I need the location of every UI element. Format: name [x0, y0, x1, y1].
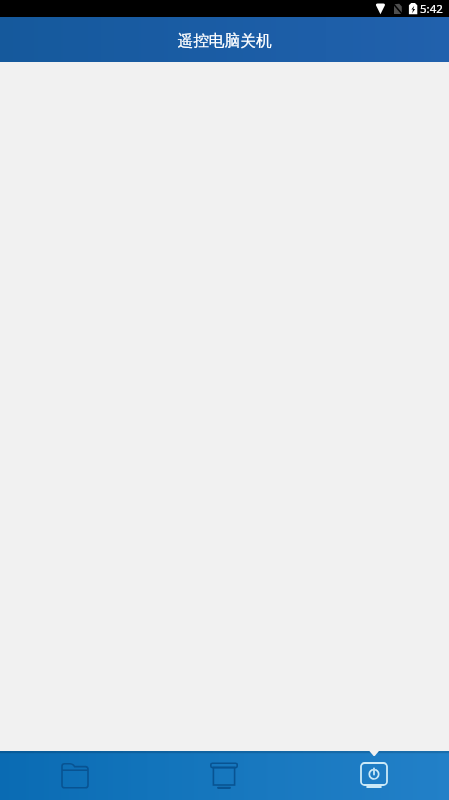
button[interactable]: Screen	[149, 751, 299, 800]
button[interactable]: Shutdown	[299, 751, 449, 800]
staticText: 遥控电脑关机	[177, 31, 272, 51]
staticText: 5:42	[420, 1, 443, 17]
button[interactable]: Files	[0, 751, 149, 800]
